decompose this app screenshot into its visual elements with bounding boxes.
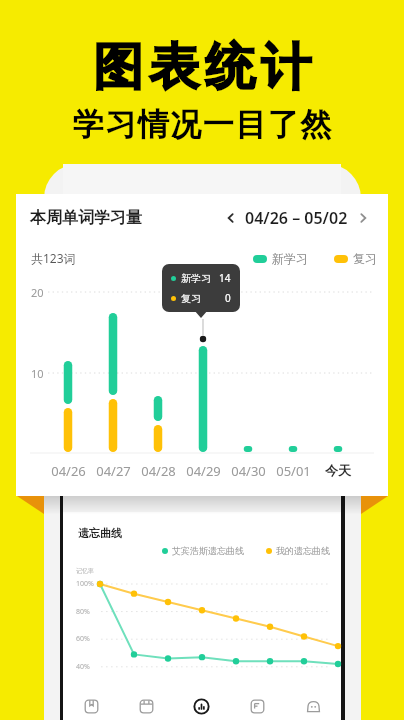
staticText: 80% (76, 607, 90, 617)
staticText: 40% (76, 662, 90, 672)
button[interactable]: 复习 (334, 251, 377, 266)
staticText: 14 (219, 271, 231, 285)
staticText: 20 (31, 285, 44, 300)
staticText: 60% (76, 634, 90, 644)
staticText: 复习 (181, 292, 201, 305)
staticText: 遗忘曲线 (78, 526, 122, 540)
staticText: 本周单词学习量 (30, 208, 142, 228)
staticText: 学习情况一目了然 (72, 105, 332, 144)
staticText: 05/01 (276, 462, 311, 480)
staticText: 04/29 (186, 462, 221, 480)
staticText: 复习 (353, 251, 377, 266)
button[interactable]: Statistics (180, 692, 222, 720)
button[interactable]: Me (292, 692, 334, 720)
staticText: 新学习 (272, 251, 308, 266)
staticText: 0 (225, 291, 231, 305)
staticText: 新学习 (181, 272, 211, 285)
button[interactable]: Cards (125, 692, 167, 720)
button[interactable]: Next week (348, 203, 378, 233)
staticText: 共123词 (31, 250, 76, 266)
button[interactable]: Previous week (217, 204, 245, 232)
staticText: 图表统计 (90, 36, 314, 99)
staticText: 100% (76, 579, 94, 589)
staticText: 艾宾浩斯遗忘曲线 (172, 545, 244, 556)
staticText: 04/27 (96, 462, 131, 480)
staticText: 10 (31, 366, 44, 381)
button[interactable]: 新学习 (253, 251, 308, 266)
staticText: 04/26 (51, 462, 86, 480)
button[interactable]: Plan (236, 692, 278, 720)
staticText: 记忆率 (76, 567, 94, 575)
staticText: 今天 (325, 462, 351, 478)
staticText: 04/30 (231, 462, 266, 480)
staticText: 04/28 (141, 462, 176, 480)
button[interactable]: 艾宾浩斯遗忘曲线 (162, 545, 330, 556)
staticText: 我的遗忘曲线 (276, 545, 330, 556)
button[interactable]: Word book (70, 692, 112, 720)
staticText: 04/26 – 05/02 (245, 207, 348, 229)
